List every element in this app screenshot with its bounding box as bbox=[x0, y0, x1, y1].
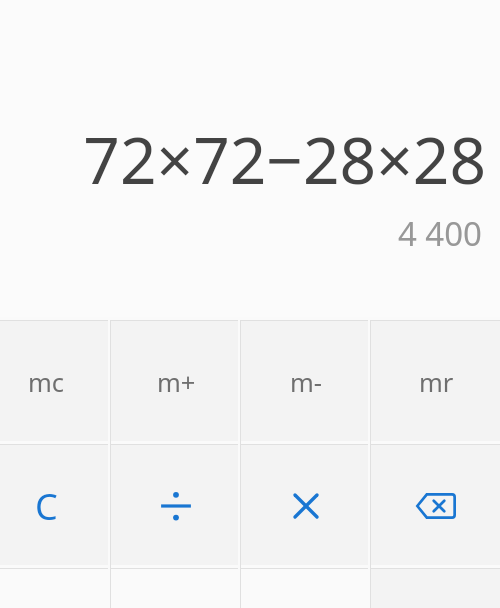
button[interactable]: m- bbox=[241, 320, 371, 444]
button[interactable]: mc bbox=[0, 320, 111, 444]
button[interactable]: 9 bbox=[241, 568, 371, 608]
staticText: 72×72−28×28 bbox=[83, 116, 486, 203]
staticText: mc bbox=[28, 365, 65, 400]
button[interactable]: C bbox=[0, 444, 111, 568]
staticText: mr bbox=[419, 365, 454, 400]
button[interactable]: m+ bbox=[111, 320, 241, 444]
staticText: C bbox=[35, 482, 58, 531]
button[interactable]: 7 bbox=[0, 568, 111, 608]
button[interactable]: Divide bbox=[111, 444, 241, 568]
staticText: m+ bbox=[157, 365, 196, 400]
button[interactable]: Backspace bbox=[371, 444, 500, 568]
button[interactable]: Multiply bbox=[241, 444, 371, 568]
staticText: m- bbox=[290, 365, 323, 400]
button[interactable]: mr bbox=[371, 320, 500, 444]
button[interactable]: 8 bbox=[111, 568, 241, 608]
staticText: 4 400 bbox=[397, 211, 482, 256]
